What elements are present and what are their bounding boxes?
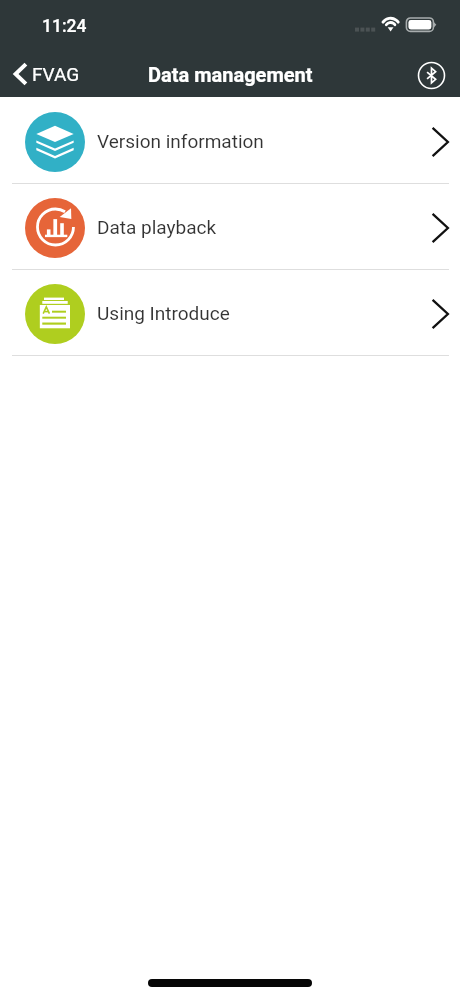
button[interactable]: Data playback xyxy=(0,184,460,269)
staticText: 11:24 xyxy=(42,16,87,37)
button[interactable]: Using Introduce xyxy=(0,270,460,355)
button[interactable]: Version information xyxy=(0,98,460,183)
staticText: Data management xyxy=(148,63,313,86)
staticText: Data playback xyxy=(97,216,217,238)
staticText: FVAG xyxy=(32,63,80,85)
staticText: Using Introduce xyxy=(97,302,230,324)
staticText: Version information xyxy=(97,130,264,152)
button[interactable]: Bluetooth xyxy=(417,61,446,90)
button[interactable]: FVAG xyxy=(0,58,90,90)
